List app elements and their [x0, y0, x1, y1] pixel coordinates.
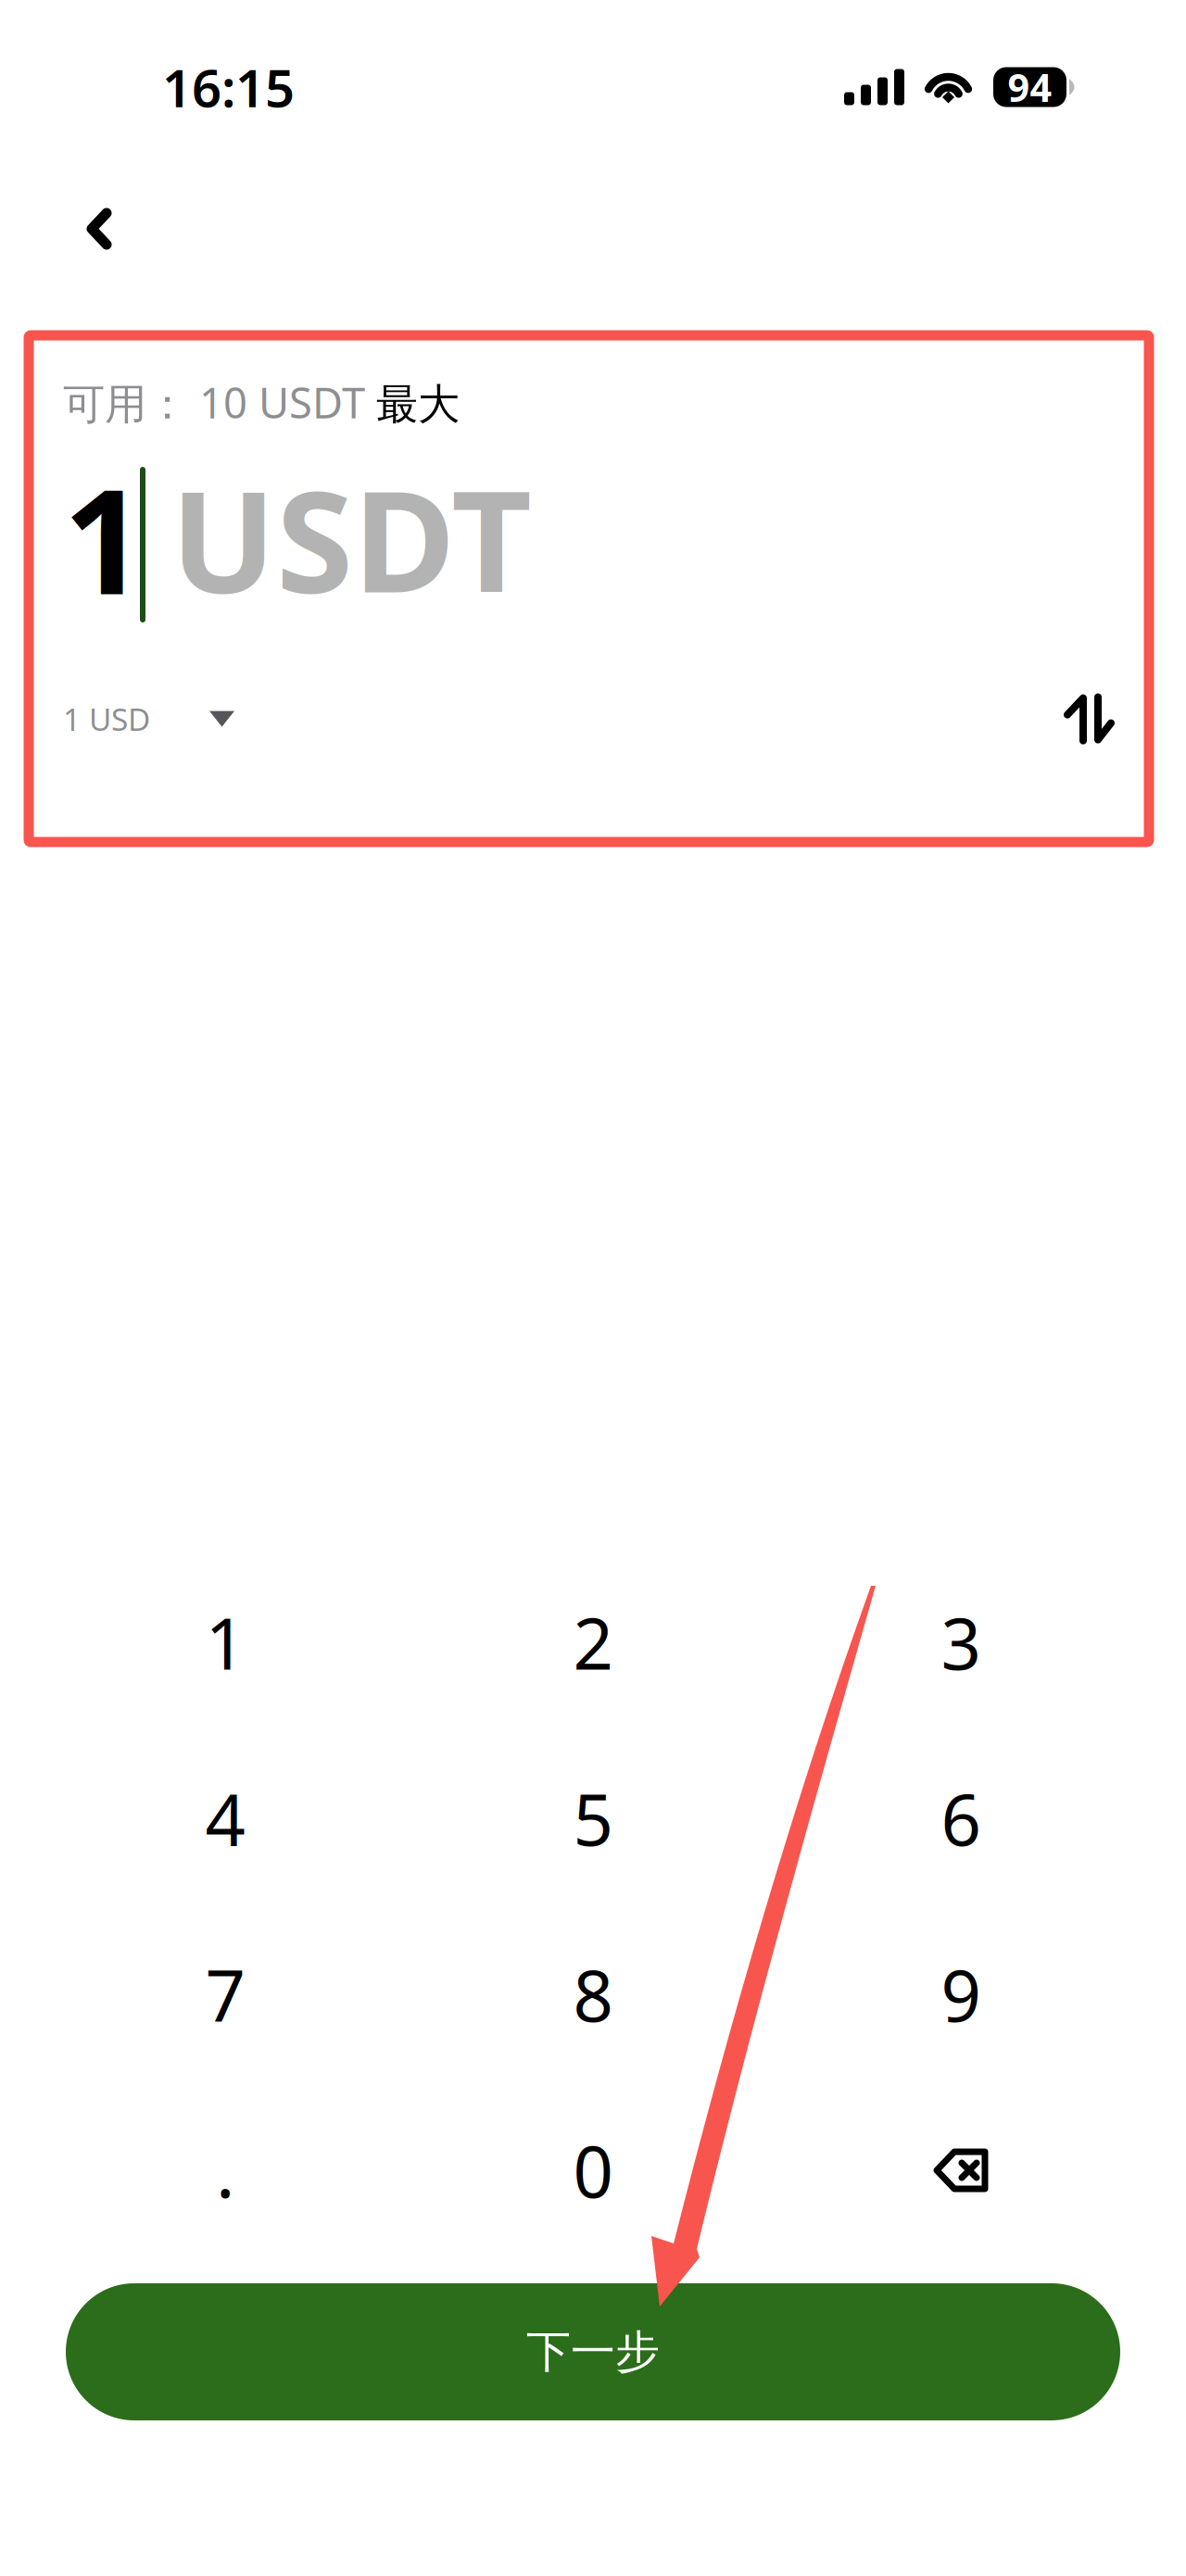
- button[interactable]: 3: [777, 1554, 1145, 1730]
- button[interactable]: 6: [777, 1730, 1145, 1906]
- staticText: 9: [941, 1948, 981, 2041]
- button[interactable]: .: [41, 2082, 409, 2258]
- staticText: 5: [573, 1772, 613, 1865]
- button[interactable]: 7: [41, 1906, 409, 2082]
- staticText: 1 USD: [63, 698, 150, 739]
- button[interactable]: 下一步: [66, 2283, 1120, 2420]
- staticText: 94: [1008, 62, 1052, 113]
- button[interactable]: Back: [0, 180, 159, 278]
- staticText: 可用：: [63, 379, 188, 430]
- staticText: 10 USDT: [188, 374, 376, 430]
- button[interactable]: Swap currency: [1064, 693, 1115, 744]
- staticText: USDT: [170, 446, 532, 631]
- staticText: 16:15: [162, 53, 295, 122]
- button[interactable]: 4: [41, 1730, 409, 1906]
- staticText: 1: [205, 1596, 245, 1689]
- button[interactable]: 5: [409, 1730, 777, 1906]
- staticText: 4: [205, 1772, 245, 1865]
- staticText: 2: [573, 1596, 613, 1689]
- button[interactable]: 8: [409, 1906, 777, 2082]
- button[interactable]: 0: [409, 2082, 777, 2258]
- staticText: 0: [573, 2124, 613, 2217]
- staticText: 7: [205, 1948, 245, 2041]
- staticText: 1: [63, 442, 145, 634]
- button[interactable]: 1 USD: [63, 698, 234, 739]
- button[interactable]: 1: [41, 1554, 409, 1730]
- staticText: 最大: [376, 379, 460, 430]
- button[interactable]: Delete: [777, 2082, 1145, 2258]
- button[interactable]: 2: [409, 1554, 777, 1730]
- staticText: .: [216, 2124, 234, 2217]
- staticText: 8: [573, 1948, 613, 2041]
- staticText: 6: [941, 1772, 981, 1865]
- button[interactable]: 最大: [376, 379, 460, 430]
- button[interactable]: 9: [777, 1906, 1145, 2082]
- staticText: 3: [941, 1596, 981, 1689]
- staticText: 下一步: [526, 2325, 660, 2379]
